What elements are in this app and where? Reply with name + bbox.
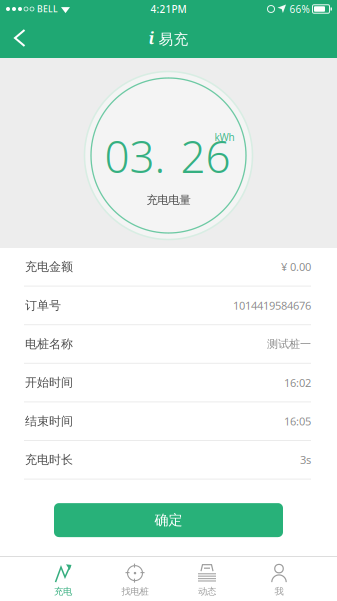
button[interactable]: 充电 xyxy=(27,557,99,599)
staticText: i 易充 xyxy=(148,27,188,49)
staticText: kWh xyxy=(214,130,234,144)
staticText: 充电电量 xyxy=(146,193,190,207)
staticText: 开始时间 xyxy=(25,375,73,390)
button[interactable]: 找电桩 xyxy=(99,557,171,599)
button[interactable]: Back xyxy=(0,18,45,58)
staticText: ¥ 0.00 xyxy=(281,259,311,274)
staticText: 1014419584676 xyxy=(233,298,311,313)
staticText: 电桩名称 xyxy=(25,336,73,351)
staticText: 16:05 xyxy=(284,414,311,429)
staticText: 订单号 xyxy=(25,298,61,313)
staticText: 16:02 xyxy=(284,375,311,390)
staticText: 4:21PM xyxy=(150,2,186,16)
staticText: 26 xyxy=(180,126,230,186)
staticText: 充电 xyxy=(54,586,72,597)
staticText: 找电桩 xyxy=(121,586,148,597)
staticText: 确定 xyxy=(154,511,182,529)
staticText: 充电时长 xyxy=(25,452,73,467)
staticText: BELL xyxy=(37,3,58,15)
button[interactable]: 确定 xyxy=(54,503,283,537)
staticText: 03. xyxy=(104,126,165,186)
staticText: 充电金额 xyxy=(25,259,73,274)
button[interactable]: 动态 xyxy=(171,557,243,599)
staticText: 结束时间 xyxy=(25,414,73,429)
staticText: 3s xyxy=(300,452,311,467)
staticText: 66% xyxy=(289,2,309,16)
staticText: 我 xyxy=(274,586,283,597)
staticText: 动态 xyxy=(198,586,216,597)
staticText: 测试桩一 xyxy=(267,337,311,351)
button[interactable]: 我 xyxy=(243,557,315,599)
